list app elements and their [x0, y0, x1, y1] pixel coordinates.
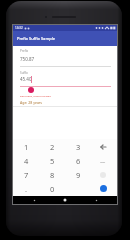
button[interactable]: 6	[65, 154, 91, 168]
staticText: 7	[24, 170, 29, 180]
staticText: next	[100, 160, 106, 163]
staticText: 8	[50, 170, 55, 180]
button[interactable]: 1	[13, 139, 39, 154]
other: Backspace	[100, 144, 106, 150]
staticText: 2	[50, 142, 55, 152]
button[interactable]: next	[91, 154, 117, 168]
button[interactable]: 3	[65, 139, 91, 154]
button[interactable]: Backspace	[91, 139, 117, 154]
button[interactable]: 2	[39, 139, 65, 154]
button[interactable]: 8	[39, 168, 65, 182]
button[interactable]: Options	[91, 168, 117, 182]
button[interactable]: .	[13, 182, 39, 196]
button[interactable]: 0	[39, 182, 65, 196]
button[interactable]: 7	[13, 168, 39, 182]
staticText: Bad prefix, suffix provided	[20, 94, 51, 97]
staticText: 4	[24, 156, 29, 166]
button[interactable]: Home	[55, 196, 75, 204]
button[interactable]: 4	[13, 154, 39, 168]
staticText: 6	[76, 156, 81, 166]
staticText: 1	[24, 142, 29, 152]
staticText: 750.87	[20, 56, 35, 62]
staticText: Prefix	[20, 49, 29, 53]
other: Done	[100, 185, 107, 192]
other: Options	[100, 172, 106, 178]
staticText: Prefix Suffix Sample	[17, 36, 56, 41]
staticText: 5	[50, 156, 55, 166]
button[interactable]: 9	[65, 168, 91, 182]
button[interactable]: Recents	[86, 196, 106, 204]
staticText: .	[25, 184, 28, 194]
staticText: 3	[76, 142, 81, 152]
staticText: 14:32	[15, 26, 23, 30]
staticText: 9	[76, 170, 81, 180]
button[interactable]: Done	[91, 182, 117, 196]
staticText: Age: 28 years	[20, 100, 42, 105]
button[interactable]: Back	[24, 196, 44, 204]
staticText: Suffix	[20, 71, 28, 75]
staticText: 45.40	[20, 76, 32, 82]
button[interactable]: 5	[39, 154, 65, 168]
staticText: 0	[50, 184, 55, 194]
